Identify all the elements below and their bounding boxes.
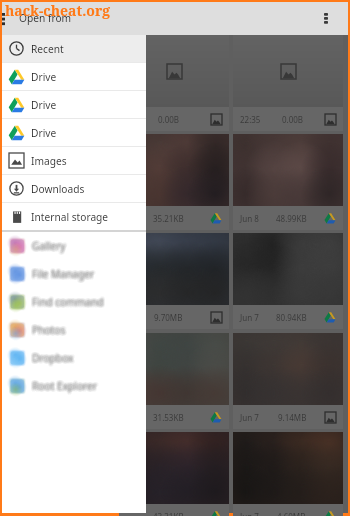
staticText: Dropbox (33, 349, 75, 363)
staticText: Open from (19, 11, 72, 25)
staticText: Gallery (33, 241, 67, 255)
button[interactable]: Drive (2, 63, 146, 90)
staticText: Gallery (32, 239, 66, 253)
staticText: Gallery (33, 237, 67, 251)
button[interactable]: 35.21KB (119, 134, 229, 230)
button[interactable]: Drive (2, 91, 146, 118)
staticText: Find command (31, 296, 103, 310)
staticText: Drive (31, 98, 57, 112)
button[interactable]: 43.31KB (119, 432, 229, 516)
staticText: Photos (31, 325, 65, 339)
staticText: Gallery (33, 240, 67, 254)
staticText: Photos (30, 323, 64, 337)
button[interactable]: 31.53KB (119, 333, 229, 429)
button[interactable]: Drive (2, 119, 146, 146)
staticText: Root Explorer (34, 380, 100, 394)
staticText: Find command (31, 293, 103, 307)
staticText: File Manager (32, 268, 95, 282)
button[interactable]: Recent (2, 35, 146, 62)
staticText: Root Explorer (33, 381, 99, 395)
staticText: Drive (31, 126, 57, 140)
staticText: Gallery (33, 239, 67, 253)
button[interactable]: Gallery (2, 232, 146, 260)
staticText: Gallery (31, 240, 65, 254)
staticText: Gallery (34, 238, 68, 252)
staticText: File Manager (30, 267, 93, 281)
staticText: Find command (33, 297, 105, 311)
staticText: File Manager (33, 266, 96, 280)
staticText: Photos (32, 324, 66, 338)
staticText: Photos (32, 325, 66, 339)
staticText: Root Explorer (33, 379, 99, 393)
staticText: Dropbox (31, 350, 73, 364)
staticText: Gallery (31, 241, 65, 255)
button[interactable]: File Manager (2, 260, 146, 288)
staticText: Gallery (31, 237, 65, 251)
staticText: Find command (34, 294, 106, 308)
button[interactable]: Jun 8 (233, 134, 343, 230)
staticText: Dropbox (32, 351, 74, 365)
staticText: File Manager (31, 268, 94, 282)
staticText: Dropbox (33, 351, 75, 365)
staticText: Find command (33, 294, 105, 308)
staticText: Photos (31, 324, 65, 338)
button[interactable]: Internal storage (2, 203, 146, 230)
staticText: Jun 7 (240, 412, 259, 423)
staticText: 0.00B (282, 114, 304, 125)
staticText: File Manager (33, 265, 96, 279)
button[interactable]: More options (315, 8, 337, 30)
staticText: File Manager (32, 266, 95, 280)
button[interactable]: Jun 7 (233, 333, 343, 429)
staticText: Photos (33, 321, 67, 335)
button[interactable]: 9.70MB (119, 233, 229, 329)
staticText: Find command (32, 293, 104, 307)
staticText: 43.31KB (153, 511, 184, 516)
staticText: hack-cheat.org (5, 1, 111, 20)
staticText: File Manager (33, 267, 96, 281)
staticText: 9.14MB (278, 412, 307, 423)
staticText: File Manager (31, 265, 94, 279)
staticText: Root Explorer (33, 378, 99, 392)
button[interactable]: Jun 7 (233, 233, 343, 329)
staticText: Dropbox (31, 351, 73, 365)
staticText: Root Explorer (30, 378, 96, 392)
staticText: Gallery (30, 238, 64, 252)
staticText: Root Explorer (31, 379, 97, 393)
staticText: Root Explorer (34, 379, 100, 393)
staticText: Photos (31, 322, 65, 336)
staticText: Photos (33, 322, 67, 336)
staticText: File Manager (32, 265, 95, 279)
staticText: Gallery (34, 240, 68, 254)
staticText: Find command (30, 296, 102, 310)
staticText: Find command (33, 295, 105, 309)
staticText: Jun 7 (240, 511, 259, 516)
staticText: Photos (31, 321, 65, 335)
staticText: Root Explorer (32, 379, 98, 393)
staticText: Find command (31, 297, 103, 311)
staticText: Photos (33, 325, 67, 339)
staticText: 35.21KB (153, 213, 184, 224)
button[interactable]: Root Explorer (2, 372, 146, 400)
staticText: Find command (30, 295, 102, 309)
button[interactable]: 0.00B (119, 35, 229, 131)
staticText: Jun 8 (240, 213, 259, 224)
button[interactable]: 22:35 (233, 35, 343, 131)
staticText: 31.53KB (153, 412, 184, 423)
staticText: Photos (34, 322, 68, 336)
button[interactable]: Jun 7 (233, 432, 343, 516)
staticText: File Manager (30, 266, 93, 280)
staticText: Dropbox (32, 352, 74, 366)
staticText: 22:35 (240, 114, 261, 125)
button[interactable]: Downloads (2, 175, 146, 202)
button[interactable]: Dropbox (2, 344, 146, 372)
staticText: Root Explorer (30, 379, 96, 393)
button[interactable]: Images (2, 147, 146, 174)
staticText: Find command (30, 294, 102, 308)
staticText: Dropbox (30, 351, 72, 365)
staticText: 0.00B (158, 114, 180, 125)
staticText: 4.60MB (277, 511, 306, 516)
button[interactable]: Photos (2, 316, 146, 344)
staticText: File Manager (31, 267, 94, 281)
staticText: Dropbox (32, 350, 74, 364)
button[interactable]: Find command (2, 288, 146, 316)
